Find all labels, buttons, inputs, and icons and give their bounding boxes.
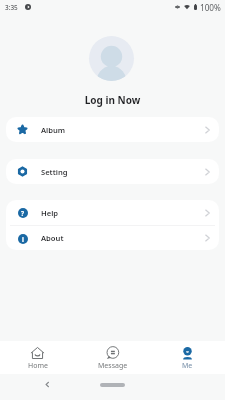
staticText: About	[41, 233, 64, 243]
button[interactable]: Album	[6, 117, 219, 142]
button[interactable]: Back	[44, 381, 51, 388]
staticText: Album	[41, 125, 66, 135]
button[interactable]: Home gesture	[100, 383, 125, 387]
button[interactable]: i	[6, 226, 219, 250]
staticText: Me	[182, 361, 193, 371]
staticText: i	[22, 235, 24, 244]
button[interactable]: Message	[75, 341, 150, 371]
button[interactable]: Home	[0, 341, 75, 371]
staticText: Setting	[41, 167, 68, 177]
button[interactable]: Setting	[6, 159, 219, 184]
button[interactable]: ?	[6, 200, 219, 225]
staticText: 3:35	[5, 3, 18, 12]
staticText: 100%	[200, 2, 221, 13]
staticText: Log in Now	[0, 93, 225, 107]
staticText: Help	[41, 208, 59, 218]
staticText: ?	[21, 209, 25, 218]
staticText: Home	[28, 361, 48, 371]
button[interactable]: Me	[150, 341, 225, 371]
staticText: Message	[98, 361, 128, 371]
